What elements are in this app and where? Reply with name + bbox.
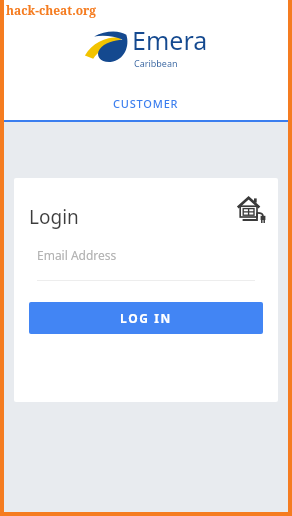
button[interactable]: CUSTOMER [4, 86, 288, 120]
button[interactable]: Email Address [37, 240, 255, 270]
staticText: Login [29, 204, 79, 230]
other: Home energy [236, 196, 266, 226]
staticText: Email Address [37, 247, 117, 263]
staticText: LOG IN [120, 310, 172, 326]
staticText: hack-cheat.org [6, 2, 97, 18]
staticText: CUSTOMER [113, 96, 179, 111]
staticText: Caribbean [134, 57, 178, 69]
button[interactable]: LOG IN [29, 302, 263, 334]
staticText: Emera [132, 23, 208, 57]
